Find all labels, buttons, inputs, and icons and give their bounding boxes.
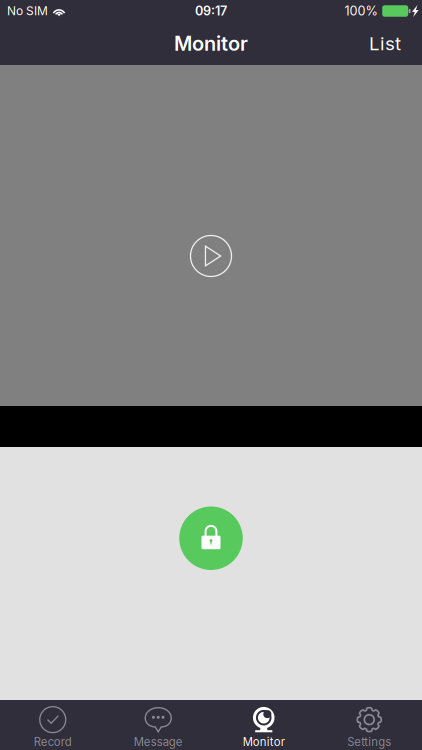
staticText: Monitor bbox=[174, 31, 248, 56]
staticText: Settings bbox=[347, 735, 391, 749]
button[interactable]: Message bbox=[105, 699, 211, 750]
button[interactable]: Settings bbox=[316, 699, 422, 750]
button[interactable]: Play bbox=[190, 235, 231, 276]
staticText: 100% bbox=[344, 3, 377, 19]
staticText: List bbox=[369, 32, 401, 55]
button[interactable]: List bbox=[355, 22, 422, 65]
staticText: Record bbox=[34, 735, 72, 749]
staticText: No SIM bbox=[7, 4, 48, 18]
staticText: Monitor bbox=[243, 735, 285, 749]
button[interactable]: Monitor bbox=[211, 699, 316, 750]
button[interactable]: Record bbox=[0, 699, 105, 750]
button[interactable]: Unlock bbox=[179, 506, 243, 570]
staticText: Message bbox=[134, 735, 183, 749]
staticText: 09:17 bbox=[195, 3, 227, 19]
